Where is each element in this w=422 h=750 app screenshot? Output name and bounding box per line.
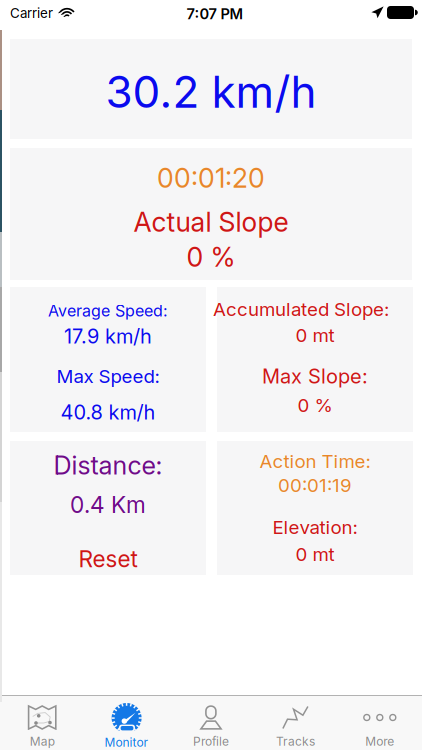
staticText: Reset bbox=[78, 545, 137, 573]
button[interactable]: Map bbox=[0, 696, 84, 750]
staticText: 17.9 km/h bbox=[64, 324, 152, 348]
button[interactable]: Tracks bbox=[253, 696, 338, 750]
staticText: Average Speed: bbox=[48, 301, 168, 320]
staticText: 7:07 PM bbox=[186, 5, 243, 23]
staticText: 0 mt bbox=[295, 543, 334, 566]
staticText: Monitor bbox=[105, 735, 149, 749]
staticText: Tracks bbox=[276, 734, 315, 748]
staticText: 0.4 Km bbox=[70, 491, 146, 518]
staticText: Profile bbox=[193, 734, 229, 748]
staticText: Actual Slope bbox=[133, 206, 288, 238]
staticText: Distance: bbox=[53, 450, 162, 481]
staticText: More bbox=[365, 734, 394, 748]
button[interactable]: More bbox=[338, 696, 422, 750]
button[interactable]: Reset bbox=[10, 546, 206, 572]
staticText: 0 % bbox=[297, 394, 332, 417]
staticText: 0 % bbox=[186, 241, 235, 273]
staticText: 40.8 km/h bbox=[60, 400, 155, 424]
staticText: Action Time: bbox=[259, 450, 370, 473]
staticText: Map bbox=[30, 734, 55, 748]
staticText: Elevation: bbox=[272, 516, 357, 539]
staticText: Accumulated Slope: bbox=[213, 298, 389, 321]
staticText: 30.2 km/h bbox=[105, 65, 316, 118]
staticText: 00:01:19 bbox=[278, 474, 352, 497]
staticText: 00:01:20 bbox=[157, 162, 265, 194]
staticText: 0 mt bbox=[295, 324, 334, 347]
staticText: Max Slope: bbox=[262, 364, 368, 388]
button[interactable]: Monitor bbox=[84, 696, 169, 750]
staticText: Max Speed: bbox=[56, 365, 159, 388]
staticText: Carrier bbox=[10, 5, 53, 21]
button[interactable]: Profile bbox=[169, 696, 253, 750]
